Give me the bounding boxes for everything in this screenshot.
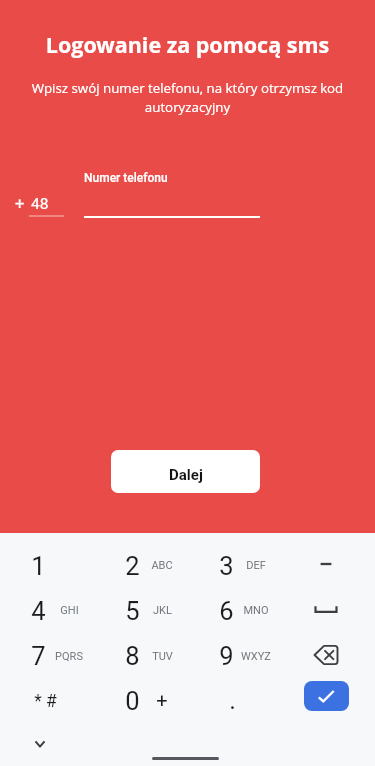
button[interactable] — [192, 634, 284, 678]
button[interactable]: Dalej — [111, 450, 260, 493]
staticText: 3 — [219, 551, 234, 581]
staticText: + — [15, 194, 25, 213]
staticText: * # — [34, 691, 57, 712]
staticText: PQRS — [55, 650, 83, 663]
staticText: + — [156, 688, 168, 711]
staticText: DEF — [246, 559, 266, 572]
staticText: 6 — [219, 596, 234, 626]
button[interactable] — [98, 544, 190, 588]
staticText: JKL — [153, 604, 172, 617]
staticText: ABC — [151, 559, 173, 572]
staticText: GHI — [60, 604, 79, 617]
button[interactable]: Minus — [304, 544, 348, 584]
staticText: Numer telefonu — [84, 171, 168, 185]
button[interactable] — [192, 589, 284, 633]
button[interactable] — [4, 634, 96, 678]
button[interactable] — [192, 544, 284, 588]
staticText: MNO — [243, 604, 269, 617]
button[interactable] — [4, 544, 96, 588]
staticText: WXYZ — [241, 650, 271, 663]
staticText: 7 — [31, 641, 46, 671]
button[interactable]: Space — [304, 589, 348, 629]
staticText: Logowanie za pomocą sms — [0, 30, 375, 59]
staticText: 8 — [125, 641, 140, 671]
staticText: TUV — [152, 650, 173, 663]
button[interactable]: Enter — [304, 681, 349, 711]
staticText: . — [229, 685, 236, 715]
staticText: 4 — [31, 596, 46, 626]
staticText: 5 — [125, 596, 140, 626]
button[interactable]: Backspace — [304, 635, 348, 675]
button[interactable] — [98, 589, 190, 633]
staticText: 0 — [125, 686, 140, 716]
button[interactable] — [4, 589, 96, 633]
staticText: 2 — [125, 551, 140, 581]
staticText: 48 — [31, 195, 49, 213]
button[interactable]: Hide keyboard — [26, 732, 54, 756]
staticText: 1 — [31, 551, 46, 581]
button[interactable] — [98, 634, 190, 678]
staticText: Wpisz swój numer telefonu, na który otrz… — [24, 79, 351, 115]
staticText: Dalej — [169, 466, 203, 484]
staticText: 9 — [219, 641, 234, 671]
